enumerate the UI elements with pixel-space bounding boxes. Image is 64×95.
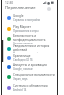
button[interactable]: Специальные возможности bbox=[0, 71, 64, 82]
button[interactable]: Google bbox=[0, 12, 64, 23]
staticText: Хранилище bbox=[13, 54, 31, 58]
staticText: Защита данных bbox=[13, 42, 33, 44]
staticText: Экран, звук bbox=[13, 77, 28, 81]
staticText: Аккаунты и архивация bbox=[13, 63, 47, 67]
staticText: Безопасность и конфиденциальность bbox=[13, 34, 57, 42]
staticText: Свободно 32 ГБ bbox=[13, 58, 33, 62]
staticText: Google, личные bbox=[13, 67, 33, 71]
button[interactable]: Уведомления и история действий bbox=[0, 44, 64, 53]
staticText: Показ уведомлений bbox=[13, 52, 39, 53]
staticText: 12:30 bbox=[5, 1, 14, 5]
staticText: Приложения и игры bbox=[13, 29, 39, 33]
button[interactable]: Play Маркет bbox=[0, 23, 64, 34]
staticText: Android 14 bbox=[13, 88, 27, 92]
button[interactable]: Безопасность и конфиденциальность bbox=[0, 34, 64, 44]
staticText: Специальные возможности bbox=[13, 73, 55, 77]
staticText: Переключение bbox=[5, 5, 36, 11]
staticText: Play Маркет bbox=[13, 25, 31, 29]
button[interactable]: Аккаунт bbox=[47, 7, 51, 11]
button[interactable]: Хранилище bbox=[0, 53, 64, 62]
button[interactable]: Аккаунты и архивация bbox=[0, 62, 64, 71]
staticText: Уведомления и история действий bbox=[13, 44, 57, 52]
button[interactable]: Система и обновления bbox=[0, 82, 64, 93]
staticText: Сервисы и настройки bbox=[13, 18, 41, 22]
staticText: Система и обновления bbox=[13, 84, 48, 88]
staticText: Google bbox=[13, 14, 24, 18]
